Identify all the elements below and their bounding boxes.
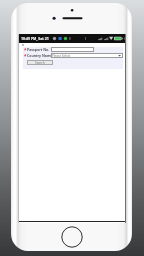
staticText: Please Select — [52, 54, 71, 58]
staticText: * — [24, 53, 27, 59]
button[interactable]: Please Select — [51, 53, 123, 58]
staticText: 10:49 PM, Sat 21 — [21, 36, 49, 41]
button[interactable]: Passport number input — [51, 47, 94, 52]
staticText: * — [24, 47, 27, 53]
button[interactable]: Search — [27, 60, 53, 65]
staticText: Passport No. — [27, 47, 50, 52]
staticText: Country Name — [27, 53, 53, 58]
button[interactable]: Home — [61, 226, 83, 248]
staticText: Search — [35, 61, 45, 65]
